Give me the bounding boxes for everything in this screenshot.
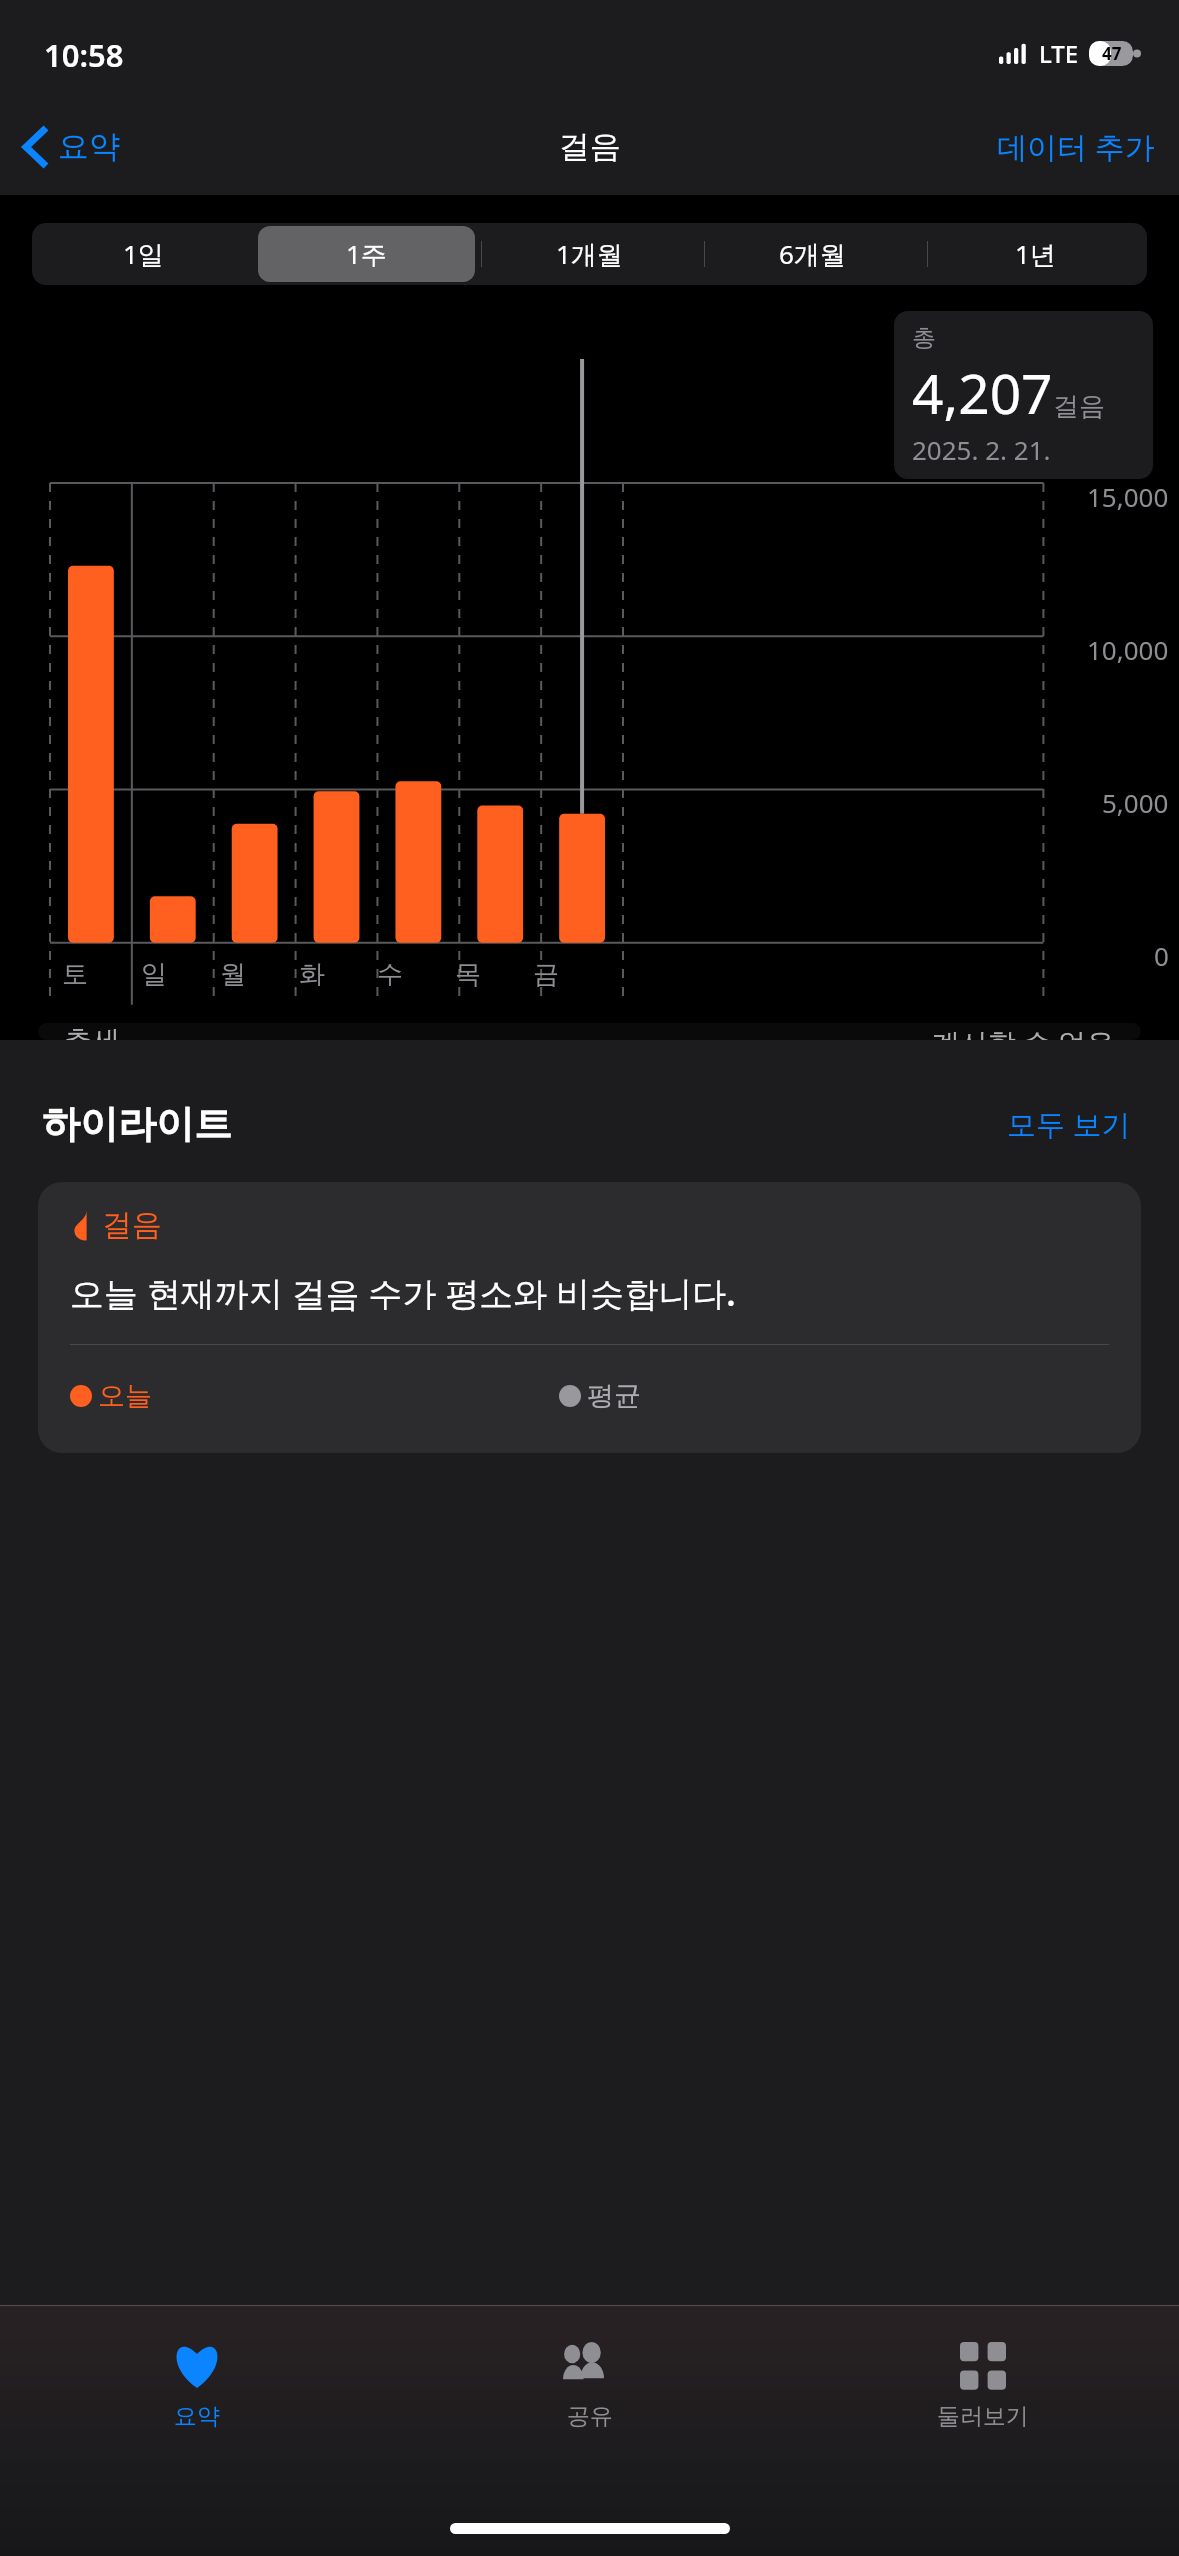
staticText: 걸음: [559, 127, 621, 166]
staticText: 목: [455, 958, 481, 991]
staticText: 5,000: [1102, 785, 1169, 820]
staticText: 모두 보기: [1007, 1104, 1131, 1144]
button[interactable]: 공유: [393, 2306, 786, 2466]
staticText: 1개월: [556, 236, 623, 272]
staticText: 1주: [346, 236, 387, 272]
button[interactable]: 모두 보기: [1001, 1098, 1137, 1150]
button[interactable]: 데이터 추가: [973, 118, 1179, 175]
staticText: 요약: [58, 127, 120, 166]
staticText: 데이터 추가: [997, 126, 1155, 167]
staticText: 수: [377, 958, 403, 991]
staticText: 10:58: [44, 34, 124, 76]
staticText: 추세: [64, 1023, 120, 1040]
staticText: 월: [220, 958, 246, 991]
staticText: 둘러보기: [937, 2402, 1029, 2431]
staticText: 계산할 수 없음: [932, 1023, 1115, 1040]
staticText: 화: [299, 958, 325, 991]
button[interactable]: 6개월: [704, 226, 921, 282]
staticText: 평균: [587, 1379, 641, 1413]
staticText: 15,000: [1087, 479, 1169, 514]
button[interactable]: 요약: [0, 2306, 393, 2466]
button[interactable]: 요약: [0, 119, 136, 174]
staticText: 오늘: [98, 1379, 152, 1413]
staticText: 하이라이트: [42, 1100, 232, 1148]
staticText: 1일: [123, 236, 164, 272]
staticText: 요약: [174, 2402, 220, 2431]
staticText: 총: [912, 323, 936, 353]
staticText: 걸음: [1053, 390, 1105, 423]
button[interactable]: 1주: [258, 226, 475, 282]
staticText: LTE: [1039, 37, 1079, 70]
staticText: 10,000: [1087, 632, 1169, 667]
staticText: 0: [1154, 938, 1169, 973]
staticText: 토: [62, 958, 88, 991]
button[interactable]: 1개월: [481, 226, 698, 282]
staticText: 1년: [1015, 236, 1056, 272]
staticText: 공유: [567, 2402, 613, 2431]
staticText: 2025. 2. 21.: [912, 432, 1051, 467]
staticText: 4,207: [912, 355, 1053, 430]
button[interactable]: 둘러보기: [786, 2306, 1179, 2466]
staticText: 6개월: [779, 236, 846, 272]
staticText: 일: [141, 958, 167, 991]
staticText: 걸음: [102, 1206, 162, 1244]
button[interactable]: 1일: [35, 226, 252, 282]
button[interactable]: 걸음: [38, 1182, 1141, 1453]
staticText: 47: [1102, 42, 1122, 65]
staticText: 금: [533, 958, 559, 991]
staticText: 오늘 현재까지 걸음 수가 평소와 비슷합니다.: [70, 1270, 736, 1316]
button[interactable]: 1년: [927, 226, 1144, 282]
button[interactable]: 추세: [38, 1023, 1141, 1040]
